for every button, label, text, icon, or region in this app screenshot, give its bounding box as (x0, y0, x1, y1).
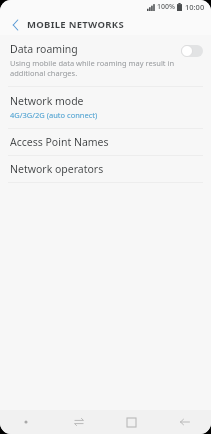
staticText: Access Point Names (10, 135, 109, 149)
staticText: 4G/3G/2G (auto connect) (10, 110, 98, 120)
button[interactable]: Recents (105, 410, 158, 434)
button[interactable]: Access Point Names (0, 129, 211, 155)
staticText: 10:00 (185, 2, 205, 12)
button[interactable]: Data roaming (0, 35, 211, 86)
staticText: Network operators (10, 162, 104, 176)
button[interactable]: Network mode (0, 87, 211, 128)
button[interactable]: Data roaming toggle, off (181, 45, 203, 57)
button[interactable]: Network operators (0, 156, 211, 182)
button[interactable]: Switch apps (52, 410, 105, 434)
staticText: Network mode (10, 94, 84, 108)
staticText: Using mobile data while roaming may resu… (10, 58, 175, 78)
button[interactable]: Back (7, 17, 23, 33)
staticText: Data roaming (10, 42, 78, 56)
staticText: 100% (157, 2, 175, 12)
button[interactable]: Back (158, 410, 211, 434)
staticText: MOBILE NETWORKS (27, 18, 124, 31)
button[interactable]: Assistant (0, 410, 52, 434)
